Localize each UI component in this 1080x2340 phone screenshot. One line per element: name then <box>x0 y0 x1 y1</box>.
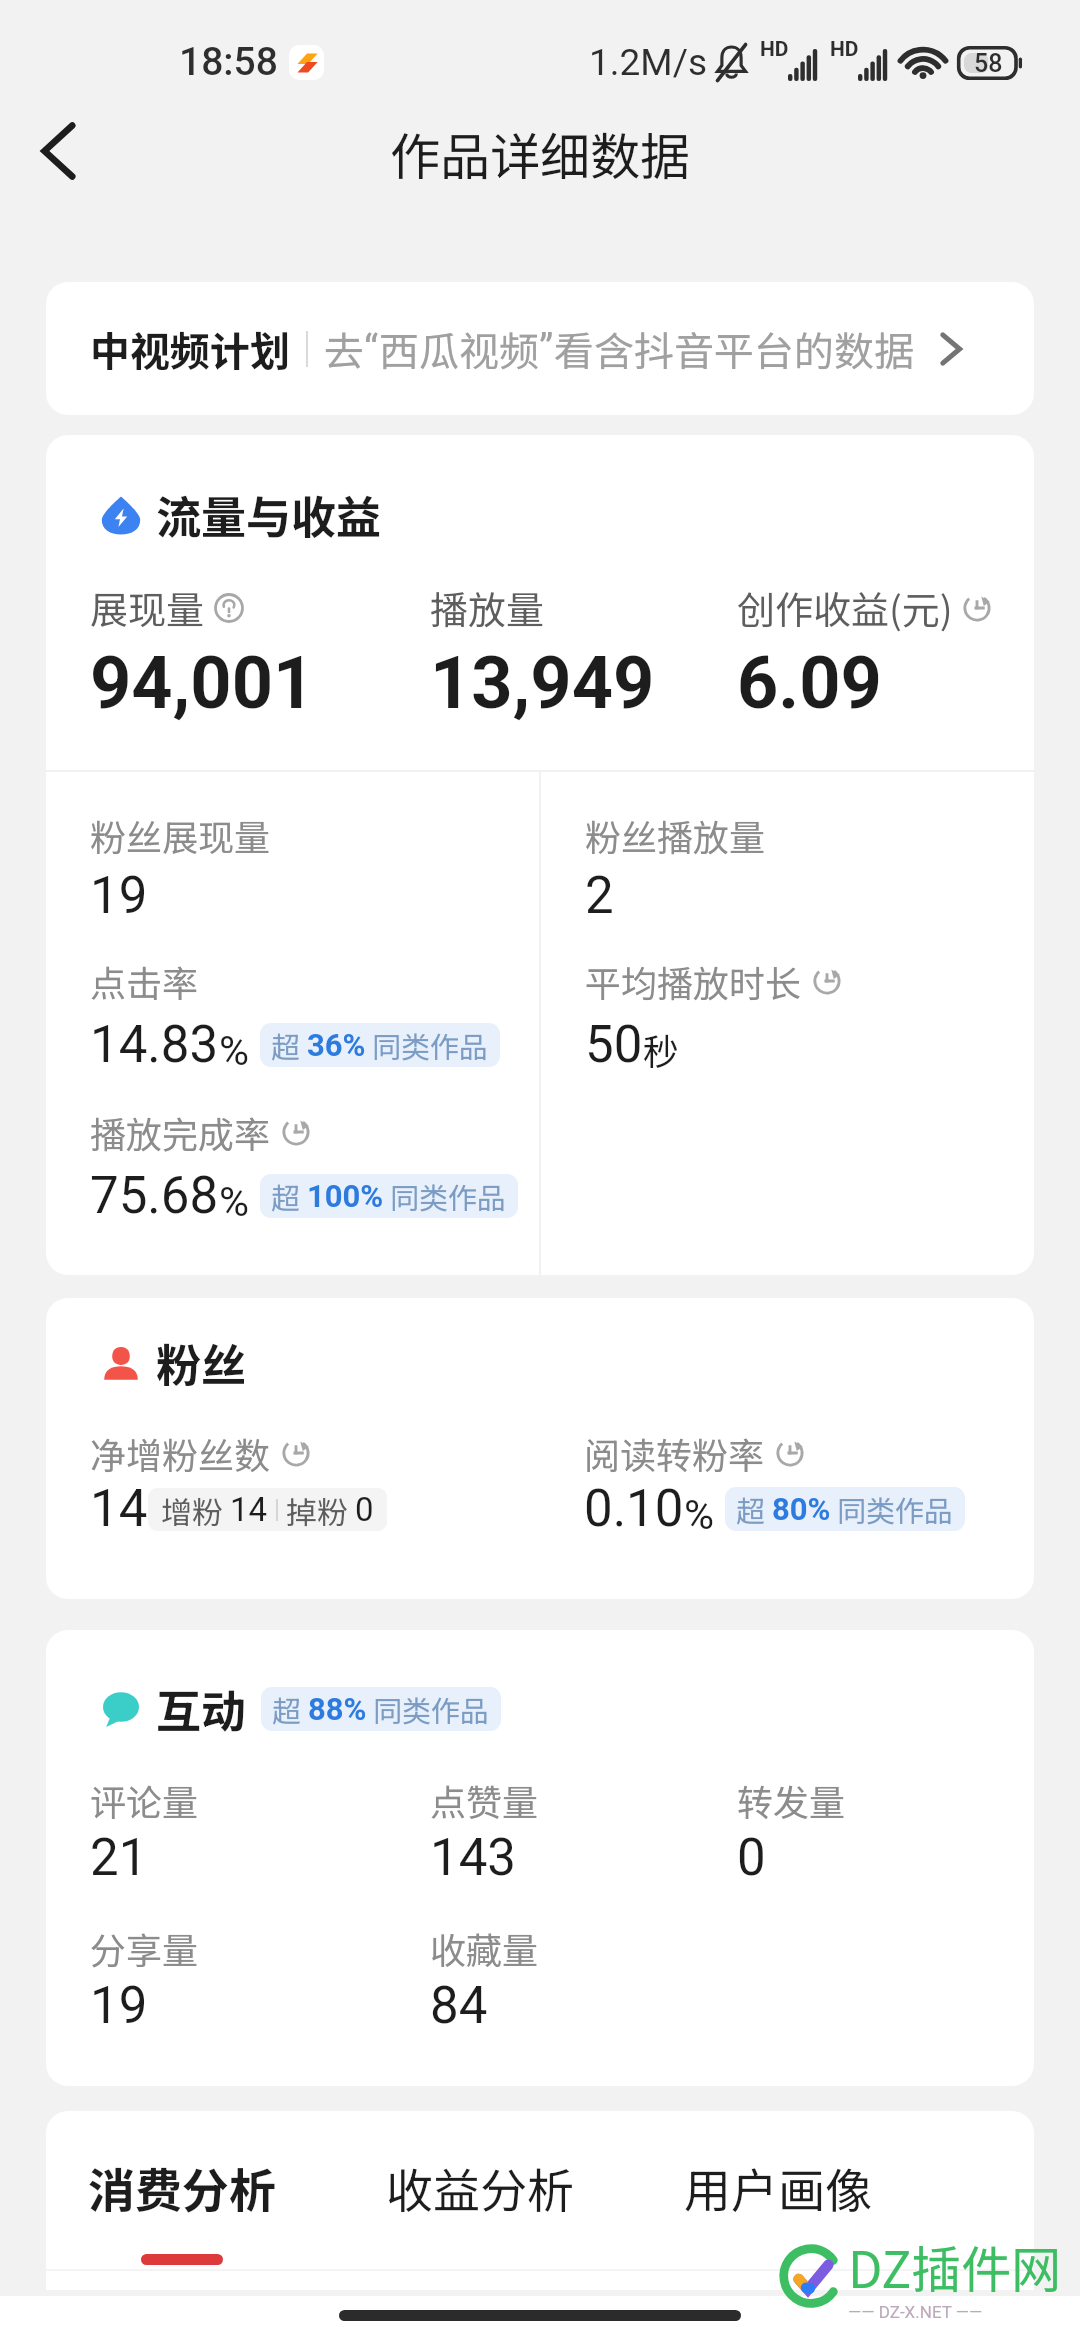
staticText: 掉粉 <box>286 1488 348 1531</box>
staticText: HD <box>760 37 789 62</box>
staticText: 19 <box>90 1976 148 2036</box>
button[interactable]: 用户画像 <box>684 2153 872 2265</box>
staticText: 50 <box>585 1015 643 1075</box>
staticText: 0 <box>737 1828 766 1888</box>
staticText: 增粉 <box>161 1488 223 1531</box>
staticText: 58 <box>974 49 1003 78</box>
staticText: 点赞量 <box>430 1774 539 1826</box>
staticText: HD <box>830 37 859 62</box>
staticText: 同类作品 <box>390 1175 507 1217</box>
staticText: 同类作品 <box>837 1488 954 1530</box>
staticText: 互动 <box>156 1676 247 1741</box>
staticText: 收益分析 <box>386 2153 574 2221</box>
staticText: 点击率 <box>90 955 199 1007</box>
staticText: 超 <box>271 1024 301 1066</box>
staticText: 超 <box>736 1488 766 1530</box>
staticText: 播放完成率 <box>90 1106 271 1158</box>
staticText: 21 <box>90 1828 148 1888</box>
staticText: 阅读转粉率 <box>584 1427 765 1479</box>
staticText: 100% <box>307 1178 384 1214</box>
staticText: 粉丝展现量 <box>90 809 271 861</box>
staticText: 36% <box>307 1027 366 1063</box>
staticText: 用户画像 <box>684 2153 872 2221</box>
staticText: 2 <box>585 866 614 926</box>
staticText: 143 <box>430 1828 516 1888</box>
staticText: 超 <box>271 1175 301 1217</box>
staticText: 14 <box>230 1490 268 1529</box>
staticText: % <box>219 1178 250 1226</box>
staticText: 流量与收益 <box>156 482 382 547</box>
staticText: 19 <box>90 866 148 926</box>
staticText: ” <box>539 326 554 373</box>
staticText: 秒 <box>643 1023 680 1075</box>
button[interactable]: 收益分析 <box>386 2153 574 2265</box>
staticText: 13,949 <box>430 641 655 725</box>
staticText: 80% <box>772 1491 831 1527</box>
button[interactable]: 消费分析 <box>88 2153 276 2265</box>
staticText: 14.83 <box>90 1015 219 1075</box>
staticText: 75.68 <box>90 1166 219 1226</box>
staticText: 84 <box>430 1976 488 2036</box>
staticText: 0 <box>355 1490 374 1529</box>
staticText: 中视频计划 <box>90 320 290 378</box>
staticText: 0.10 <box>584 1479 684 1539</box>
staticText: 转发量 <box>737 1774 846 1826</box>
staticText: DZ插件网 <box>848 2230 1062 2302</box>
staticText: 平均播放时长 <box>585 955 802 1007</box>
staticText: 同类作品 <box>372 1024 489 1066</box>
staticText: 14 <box>90 1479 148 1539</box>
staticText: 播放量 <box>430 580 545 635</box>
staticText: 去 <box>324 320 364 378</box>
staticText: “ <box>364 326 379 373</box>
staticText: 6.09 <box>737 641 882 725</box>
staticText: % <box>684 1491 715 1539</box>
staticText: 展现量 <box>90 580 205 635</box>
staticText: 评论量 <box>90 1774 199 1826</box>
staticText: 作品详细数据 <box>390 117 690 189</box>
staticText: 94,001 <box>90 641 315 725</box>
staticText: 粉丝 <box>156 1330 247 1395</box>
staticText: 粉丝播放量 <box>585 809 766 861</box>
staticText: 分享量 <box>90 1922 199 1974</box>
button[interactable]: 中视频计划 <box>46 282 1034 415</box>
staticText: —— DZ-X.NET —— <box>848 2302 983 2322</box>
staticText: 西瓜视频 <box>379 320 539 378</box>
staticText: 1.2M/s <box>589 41 708 84</box>
staticText: 看含抖音平台的数据 <box>554 320 914 378</box>
staticText: 88% <box>308 1691 367 1727</box>
button[interactable]: Back <box>8 101 108 201</box>
staticText: 收藏量 <box>430 1922 539 1974</box>
staticText: 超 <box>272 1688 302 1730</box>
staticText: 18:58 <box>179 39 278 85</box>
staticText: 创作收益(元) <box>737 580 953 635</box>
staticText: % <box>219 1027 250 1075</box>
staticText: 净增粉丝数 <box>90 1427 271 1479</box>
staticText: 消费分析 <box>88 2153 276 2221</box>
staticText: 同类作品 <box>373 1688 490 1730</box>
